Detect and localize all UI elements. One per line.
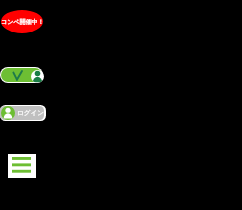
button[interactable]: Menu: [8, 154, 36, 178]
button[interactable]: コンペ開催中！: [1, 10, 43, 33]
button[interactable]: Verified account: [0, 66, 44, 85]
other: Account: [1, 106, 15, 120]
other: Account: [31, 70, 44, 83]
staticText: ログイン: [17, 109, 44, 117]
button[interactable]: ログイン: [0, 105, 47, 122]
staticText: コンペ開催中！: [1, 18, 43, 26]
